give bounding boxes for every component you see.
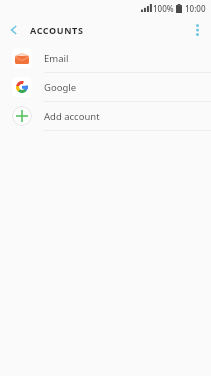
- staticText: 10:00: [185, 3, 206, 14]
- staticText: 100%: [153, 3, 174, 14]
- button[interactable]: More options: [183, 16, 211, 44]
- button[interactable]: Email: [0, 44, 211, 72]
- button[interactable]: Back: [0, 16, 28, 44]
- staticText: Email: [44, 52, 69, 65]
- staticText: Google: [44, 81, 77, 94]
- button[interactable]: Google: [0, 73, 211, 101]
- button[interactable]: Add account: [0, 102, 211, 130]
- staticText: ACCOUNTS: [30, 24, 84, 36]
- staticText: Add account: [44, 110, 100, 123]
